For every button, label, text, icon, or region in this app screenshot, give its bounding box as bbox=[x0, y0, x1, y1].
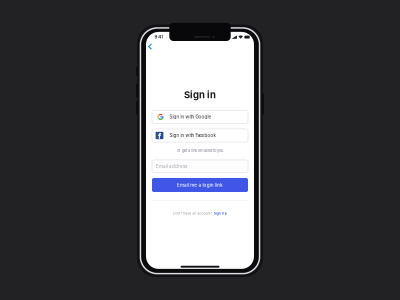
staticText: Sign Up bbox=[214, 211, 227, 215]
staticText: Sign in bbox=[184, 89, 216, 100]
staticText: Email me a login link bbox=[177, 182, 223, 188]
button[interactable]: Back bbox=[144, 41, 156, 53]
button[interactable]: Don't have an account? bbox=[173, 209, 227, 217]
button[interactable]: Sign in with Google bbox=[152, 110, 248, 123]
staticText: or get a link emailed to you bbox=[177, 148, 223, 153]
staticText: Sign in with Google bbox=[169, 114, 211, 119]
staticText: Email address bbox=[156, 164, 187, 169]
button[interactable]: Sign in with Facebook bbox=[152, 129, 248, 142]
button[interactable]: Email me a login link bbox=[152, 178, 248, 192]
staticText: 9:41 bbox=[154, 34, 163, 40]
staticText: Don't have an account? bbox=[173, 211, 212, 215]
staticText: Sign in with Facebook bbox=[169, 133, 215, 138]
